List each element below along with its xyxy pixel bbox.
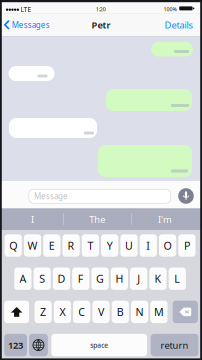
staticText: S	[39, 272, 45, 286]
staticText: Z	[40, 305, 46, 319]
button[interactable]: I'm	[131, 209, 198, 230]
staticText: T	[87, 238, 93, 253]
button[interactable]: M	[150, 301, 167, 323]
staticText: Q	[9, 238, 17, 253]
staticText: Petr	[91, 19, 110, 31]
staticText: K	[154, 272, 161, 286]
button[interactable]	[173, 301, 198, 323]
button[interactable]: V	[92, 301, 110, 323]
staticText: I	[146, 238, 150, 253]
staticText: 1:20	[96, 6, 106, 13]
button[interactable]: 123	[4, 334, 27, 356]
button[interactable]: N	[131, 301, 148, 323]
button[interactable]: The	[64, 209, 131, 230]
button[interactable]: P	[178, 234, 195, 257]
staticText: 100%	[163, 6, 176, 13]
button[interactable]: G	[91, 267, 109, 290]
staticText: The	[89, 213, 105, 225]
staticText: space	[90, 341, 108, 350]
staticText: R	[68, 238, 75, 253]
staticText: B	[117, 305, 124, 319]
button[interactable]: D	[53, 267, 70, 290]
staticText: P	[184, 238, 190, 253]
button[interactable]: F	[72, 267, 89, 290]
button[interactable]: T	[82, 234, 99, 257]
staticText: LTE	[20, 5, 31, 14]
staticText: M	[154, 305, 164, 319]
staticText: H	[115, 272, 123, 286]
staticText: N	[136, 305, 144, 319]
button[interactable]: return	[151, 334, 198, 356]
button[interactable]: Messages	[0, 13, 54, 36]
button[interactable]: U	[120, 234, 138, 257]
button[interactable]: Z	[34, 301, 52, 323]
button[interactable]: I	[140, 234, 157, 257]
button[interactable]: X	[54, 301, 71, 323]
staticText: C	[78, 305, 85, 319]
staticText: I	[31, 213, 34, 225]
button[interactable]: H	[111, 267, 128, 290]
staticText: V	[98, 305, 104, 319]
staticText: Messages	[12, 19, 50, 30]
button[interactable]: E	[43, 234, 60, 257]
staticText: Y	[107, 238, 113, 253]
button[interactable]: C	[73, 301, 90, 323]
staticText: G	[96, 272, 104, 286]
button[interactable]: Q	[5, 234, 22, 257]
button[interactable]: K	[149, 267, 167, 290]
button[interactable]: W	[24, 234, 41, 257]
staticText: Details	[165, 19, 193, 31]
button[interactable]: R	[62, 234, 80, 257]
staticText: U	[125, 238, 133, 253]
button[interactable]: I	[2, 209, 63, 230]
staticText: A	[19, 272, 26, 286]
staticText: X	[59, 305, 65, 319]
staticText: I'm	[158, 213, 172, 225]
button[interactable]: space	[51, 334, 147, 356]
button[interactable]: L	[169, 267, 186, 290]
staticText: L	[174, 272, 180, 286]
button[interactable]	[29, 334, 48, 356]
staticText: D	[57, 272, 65, 286]
button[interactable]: Record audio message	[178, 188, 194, 204]
staticText: W	[27, 238, 37, 253]
button[interactable]: B	[112, 301, 129, 323]
staticText: E	[49, 238, 55, 253]
button[interactable]: Details	[159, 13, 199, 37]
button[interactable]: A	[14, 267, 31, 290]
staticText: J	[137, 272, 140, 286]
button[interactable]: J	[130, 267, 147, 290]
staticText: Message	[34, 191, 68, 201]
staticText: O	[164, 238, 172, 253]
button[interactable]: S	[34, 267, 51, 290]
button[interactable]: O	[159, 234, 176, 257]
button[interactable]	[4, 301, 29, 323]
staticText: 123	[8, 339, 23, 351]
button[interactable]: Y	[101, 234, 118, 257]
staticText: F	[78, 272, 84, 286]
staticText: return	[160, 339, 188, 351]
